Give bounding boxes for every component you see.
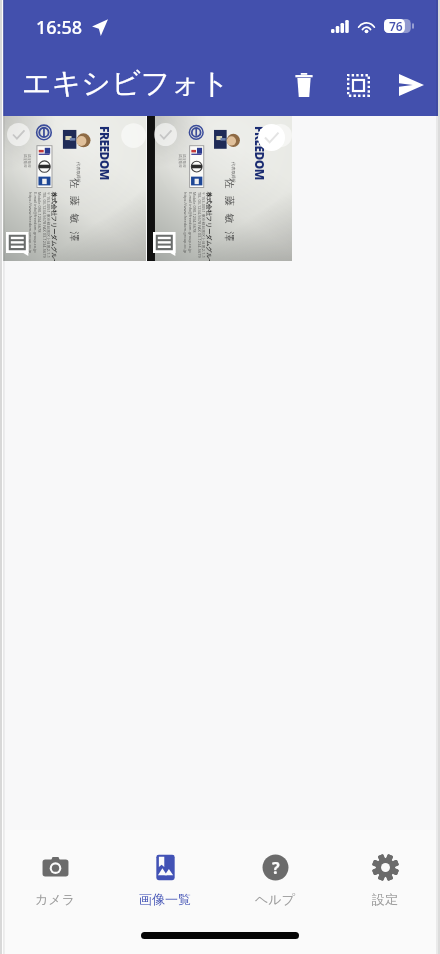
- staticText: ヘルプ: [255, 891, 295, 907]
- staticText: 16:58: [36, 15, 83, 40]
- staticText: TEL 03-1234-5678 FAX 03-1234-5679: [197, 192, 202, 258]
- staticText: カメラ: [35, 891, 75, 907]
- staticText: ?: [272, 857, 280, 879]
- staticText: FREEDOM: [252, 126, 268, 180]
- button[interactable]: 設定: [330, 830, 440, 925]
- staticText: Mobile 090-1234-5678: [37, 192, 42, 233]
- button[interactable]: Send: [385, 57, 439, 113]
- staticText: 設定: [372, 891, 398, 907]
- staticText: 株式会社フリーダムグループ: [50, 192, 58, 261]
- staticText: 代表取締役: [231, 162, 236, 183]
- staticText: 認証取得: [23, 154, 27, 168]
- button[interactable]: Select all: [331, 57, 385, 113]
- staticText: https://www.freedom-group.co.jp: [183, 192, 188, 254]
- staticText: FREEDOM: [97, 126, 113, 180]
- button[interactable]: カメラ: [0, 830, 110, 925]
- staticText: 株式会社フリーダムグループ: [205, 192, 213, 261]
- button[interactable]: FREEDOM: [0, 116, 146, 261]
- staticText: エキシビフォト: [22, 65, 230, 102]
- staticText: 76: [389, 18, 403, 34]
- button[interactable]: FREEDOM: [147, 116, 292, 261]
- staticText: 代表取締役: [76, 162, 81, 183]
- staticText: 佐 藤 敏 澤: [68, 178, 82, 242]
- staticText: 認証取得: [27, 154, 31, 168]
- button[interactable]: Delete: [277, 57, 331, 113]
- staticText: 〒153-0051 東京都目黒区上目黒2-1-1: [46, 192, 51, 258]
- button[interactable]: ?: [220, 830, 330, 925]
- staticText: E-mail info@freedom-group.co.jp: [33, 192, 38, 253]
- button[interactable]: 画像一覧: [110, 830, 220, 925]
- staticText: 佐 藤 敏 澤: [223, 178, 237, 242]
- staticText: 認証取得: [182, 154, 186, 168]
- staticText: 認証取得: [178, 154, 182, 168]
- staticText: 〒153-0051 東京都目黒区上目黒2-1-1: [201, 192, 206, 258]
- staticText: 画像一覧: [139, 891, 191, 907]
- staticText: Mobile 090-1234-5678: [192, 192, 197, 233]
- staticText: TEL 03-1234-5678 FAX 03-1234-5679: [42, 192, 47, 258]
- staticText: https://www.freedom-group.co.jp: [28, 192, 33, 254]
- staticText: E-mail info@freedom-group.co.jp: [188, 192, 193, 253]
